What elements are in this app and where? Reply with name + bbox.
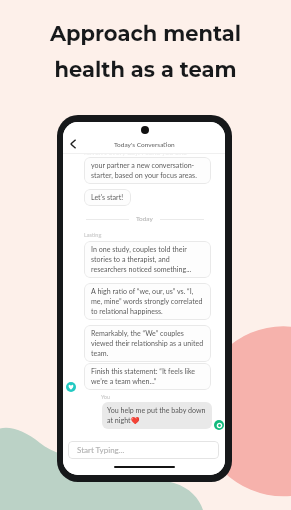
staticText: Remarkably, the “We” couples viewed thei… [91,329,204,358]
staticText: Start Typing... [77,445,125,455]
staticText: Today's Conversation [114,141,175,149]
staticText: haven't every day. I send you one [84,148,187,157]
staticText: Finish this statement: “It feels like we… [91,367,204,386]
staticText: Today [136,215,153,223]
staticText: In one study, couples told their stories… [91,245,204,274]
staticText: You [101,394,111,401]
staticText: You help me put the baby down at night❤ [107,406,207,425]
button[interactable]: Start Typing... [68,441,219,459]
staticText: A high ratio of “we, our, us” vs. “I, me… [91,287,204,316]
staticText: your partner a new conversation-starter,… [91,161,204,180]
button[interactable]: Back [64,136,80,152]
staticText: Lasting [84,232,102,239]
staticText: Approach mental health as a team [0,21,291,82]
staticText: Let's start! [91,193,124,202]
